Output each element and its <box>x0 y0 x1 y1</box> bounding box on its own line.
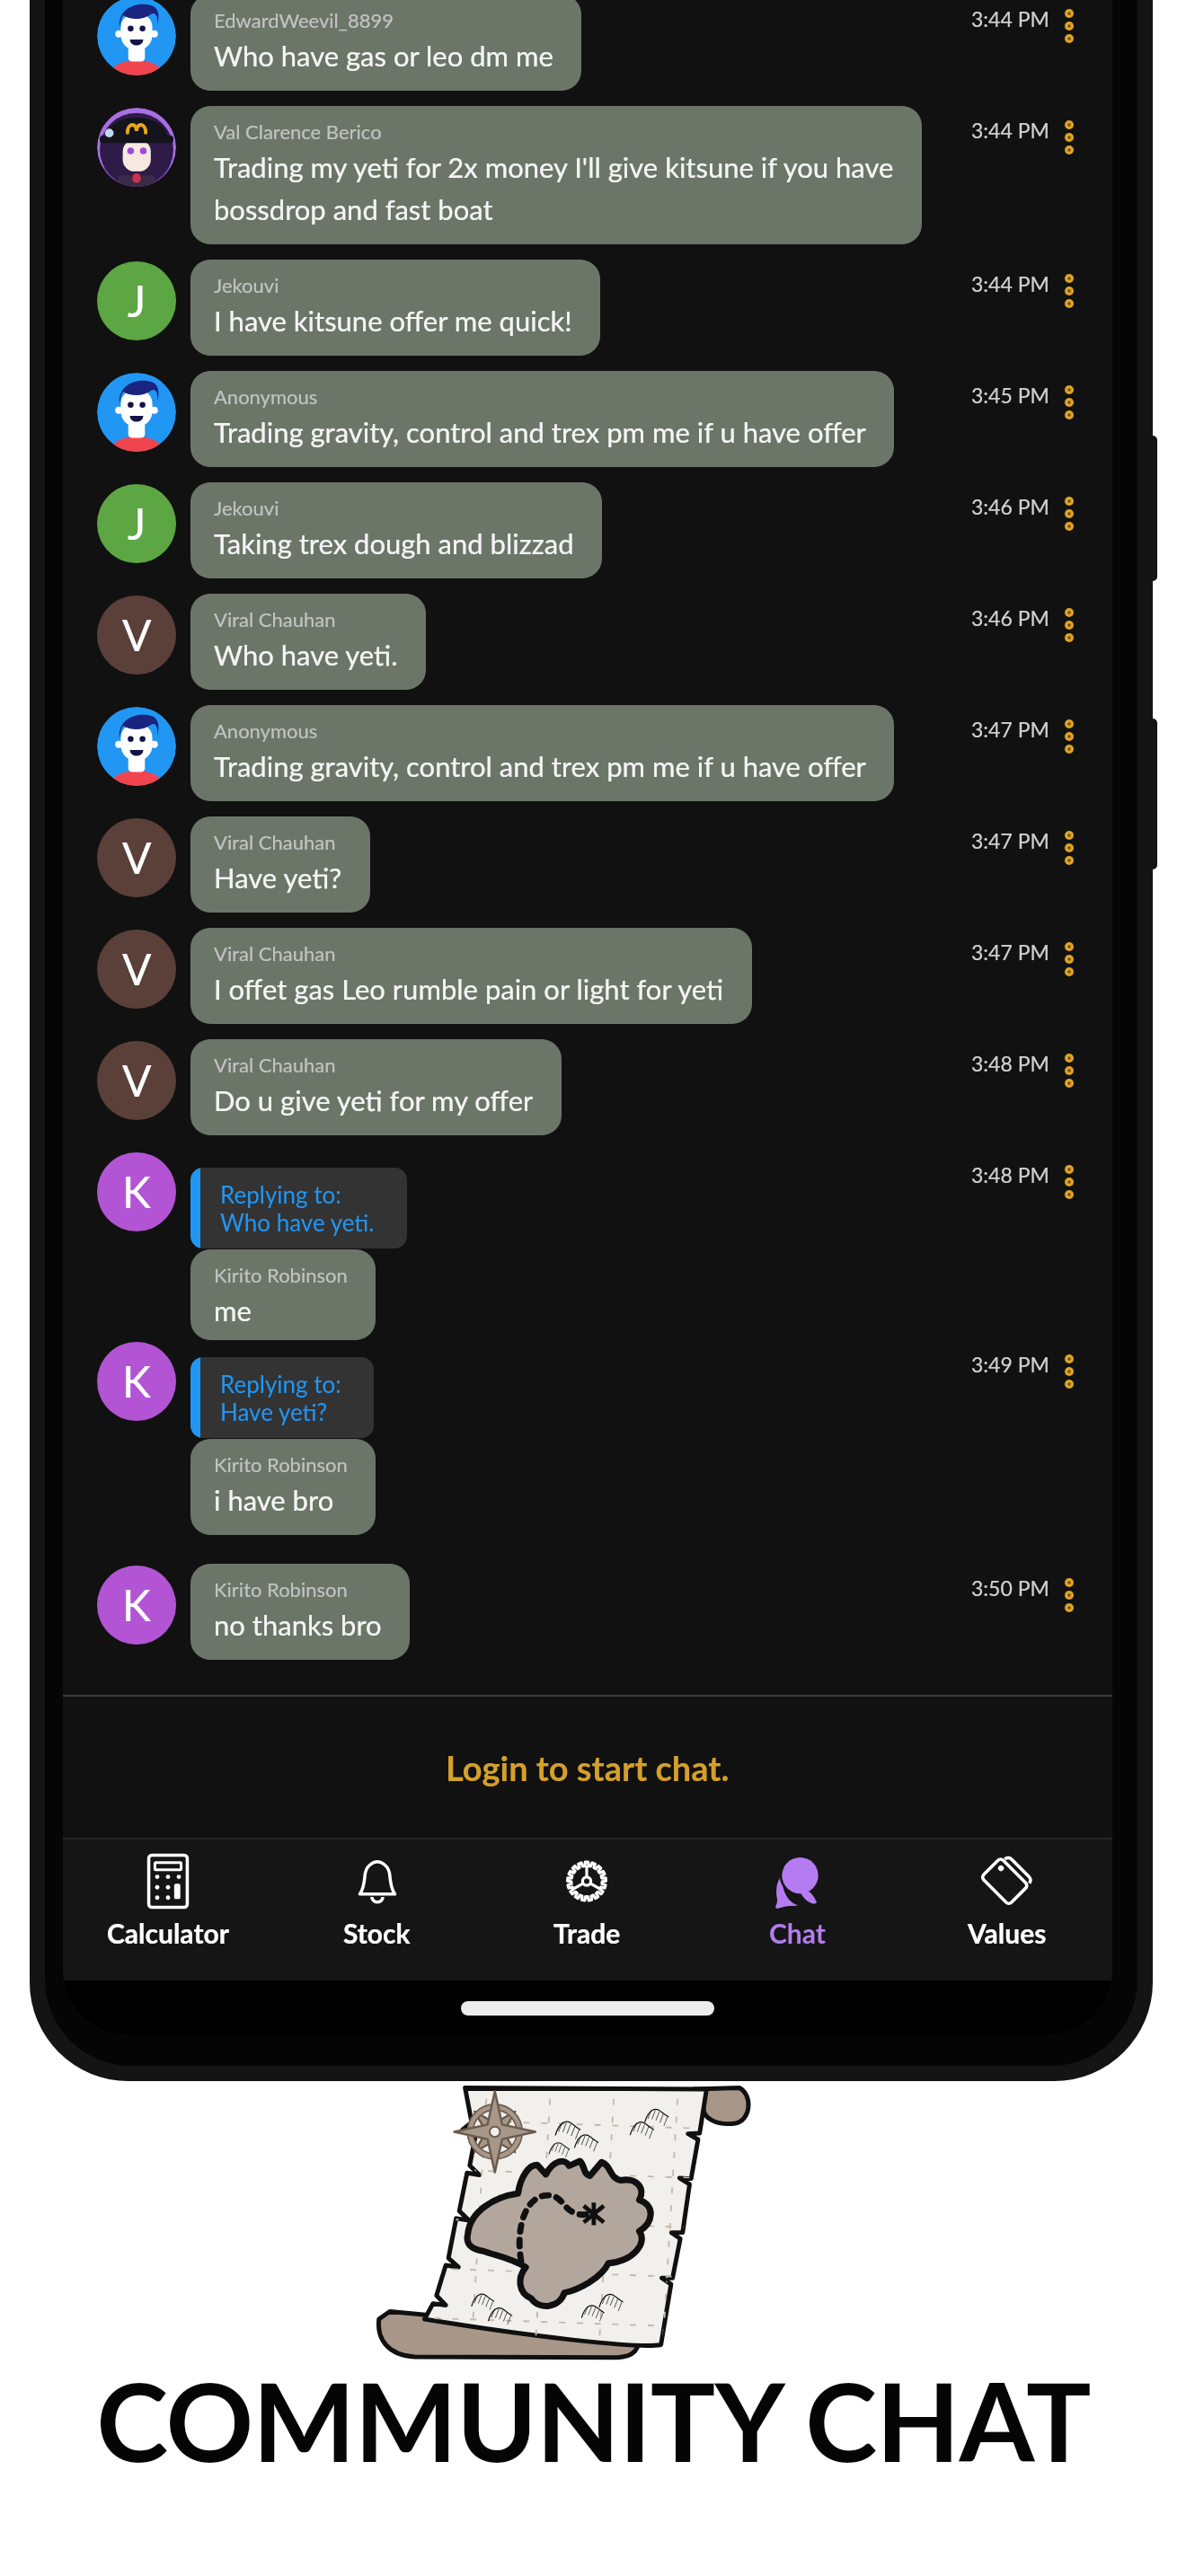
button[interactable]: Anonymous <box>63 371 1112 482</box>
button[interactable]: V <box>63 1039 1112 1151</box>
staticText: Stock <box>343 1917 411 1949</box>
staticText: Taking trex dough and blizzad <box>214 526 574 560</box>
staticText: Viral Chauhan <box>214 607 336 631</box>
staticText: Have yeti? <box>220 1398 328 1425</box>
button[interactable]: J <box>63 482 1112 594</box>
button[interactable]: J <box>63 260 1112 371</box>
staticText: V <box>122 609 152 661</box>
staticText: Trading my yeti for 2x money I'll give k… <box>214 150 894 225</box>
staticText: Replying to: <box>220 1370 341 1398</box>
button[interactable]: More options <box>1053 1349 1085 1394</box>
staticText: no thanks bro <box>214 1608 382 1641</box>
button[interactable]: More options <box>1053 269 1085 313</box>
button[interactable]: EdwardWeevil_8899 <box>63 0 1112 106</box>
staticText: Kirito Robinson <box>214 1577 348 1601</box>
staticText: 3:47 PM <box>971 828 1049 853</box>
staticText: Anonymous <box>214 384 318 408</box>
staticText: Who have yeti. <box>220 1208 375 1236</box>
staticText: Anonymous <box>214 719 318 742</box>
staticText: Val Clarence Berico <box>214 119 382 143</box>
button[interactable]: Values <box>902 1839 1112 1949</box>
staticText: V <box>122 943 152 995</box>
staticText: 3:50 PM <box>971 1575 1049 1601</box>
button[interactable]: More options <box>1053 1573 1085 1618</box>
staticText: Viral Chauhan <box>214 830 336 853</box>
staticText: 3:45 PM <box>971 383 1049 408</box>
staticText: J <box>128 275 146 327</box>
button[interactable]: K <box>63 1564 1112 1675</box>
staticText: Chat <box>769 1917 826 1949</box>
staticText: Kirito Robinson <box>214 1452 348 1476</box>
staticText: Trade <box>553 1917 621 1949</box>
staticText: Jekouvi <box>214 496 279 519</box>
staticText: 3:47 PM <box>971 717 1049 742</box>
button[interactable]: Chat <box>692 1839 902 1949</box>
button[interactable]: More options <box>1053 380 1085 425</box>
staticText: 3:48 PM <box>971 1051 1049 1076</box>
button[interactable]: K <box>63 1151 1112 1340</box>
button[interactable]: K <box>63 1340 1112 1564</box>
button[interactable]: Trade <box>482 1839 692 1949</box>
staticText: Calculator <box>107 1917 229 1949</box>
staticText: I offet gas Leo rumble pain or light for… <box>214 972 724 1005</box>
button[interactable]: More options <box>1053 1048 1085 1093</box>
button[interactable]: More options <box>1053 1160 1085 1204</box>
staticText: V <box>122 1054 152 1107</box>
staticText: 3:44 PM <box>971 271 1049 296</box>
staticText: 3:49 PM <box>971 1352 1049 1377</box>
staticText: K <box>122 1355 151 1407</box>
button[interactable]: Login to start chat. <box>63 1697 1112 1838</box>
staticText: 3:46 PM <box>971 494 1049 519</box>
staticText: 3:44 PM <box>971 6 1049 31</box>
staticText: Viral Chauhan <box>214 941 336 965</box>
staticText: 3:46 PM <box>971 605 1049 631</box>
button[interactable]: Calculator <box>63 1839 272 1949</box>
staticText: Login to start chat. <box>446 1747 730 1788</box>
button[interactable]: More options <box>1053 937 1085 982</box>
staticText: Kirito Robinson <box>214 1263 348 1286</box>
button[interactable]: Val Clarence Berico <box>63 106 1112 260</box>
staticText: I have kitsune offer me quick! <box>214 304 572 337</box>
staticText: COMMUNITY CHAT <box>96 2355 1091 2485</box>
button[interactable]: More options <box>1053 4 1085 49</box>
staticText: Trading gravity, control and trex pm me … <box>214 749 866 782</box>
staticText: 3:48 PM <box>971 1162 1049 1187</box>
staticText: Have yeti? <box>214 860 342 894</box>
button[interactable]: V <box>63 816 1112 928</box>
staticText: Jekouvi <box>214 273 279 296</box>
staticText: Do u give yeti for my offer <box>214 1083 534 1116</box>
button[interactable]: More options <box>1053 115 1085 160</box>
staticText: 3:44 PM <box>971 118 1049 143</box>
staticText: i have bro <box>214 1483 334 1516</box>
button[interactable]: More options <box>1053 603 1085 648</box>
button[interactable]: Anonymous <box>63 705 1112 816</box>
staticText: EdwardWeevil_8899 <box>214 8 394 31</box>
staticText: Replying to: <box>220 1180 341 1208</box>
button[interactable]: Stock <box>272 1839 482 1949</box>
staticText: Trading gravity, control and trex pm me … <box>214 415 866 448</box>
staticText: me <box>214 1293 252 1321</box>
button[interactable]: V <box>63 928 1112 1039</box>
staticText: J <box>128 498 146 550</box>
button[interactable]: More options <box>1053 491 1085 536</box>
staticText: K <box>122 1579 151 1631</box>
button[interactable]: More options <box>1053 714 1085 759</box>
staticText: 3:47 PM <box>971 940 1049 965</box>
staticText: Values <box>968 1917 1047 1949</box>
staticText: Viral Chauhan <box>214 1053 336 1076</box>
button[interactable]: More options <box>1053 825 1085 870</box>
staticText: Who have gas or leo dm me <box>214 39 553 72</box>
button[interactable]: V <box>63 594 1112 705</box>
staticText: K <box>122 1166 151 1218</box>
staticText: V <box>122 832 152 884</box>
staticText: Who have yeti. <box>214 638 398 671</box>
